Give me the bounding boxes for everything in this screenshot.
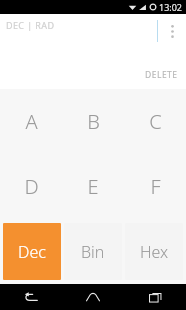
button[interactable]: E	[62, 154, 124, 219]
staticText: Dec	[18, 241, 46, 263]
button[interactable]: C	[124, 89, 186, 154]
button[interactable]: D	[0, 154, 62, 219]
staticText: Hex	[140, 241, 169, 263]
staticText: B	[87, 108, 100, 135]
staticText: D	[24, 173, 39, 200]
button[interactable]: Dec	[3, 223, 61, 280]
staticText: A	[25, 108, 38, 135]
button[interactable]: F	[124, 154, 186, 219]
staticText: F	[150, 173, 161, 200]
button[interactable]: Back	[0, 284, 62, 310]
staticText: DEC | RAD	[6, 19, 55, 31]
button[interactable]: Bin	[64, 223, 122, 280]
staticText: 13:02	[159, 1, 183, 13]
button[interactable]: Recent apps	[124, 284, 186, 310]
staticText: DELETE	[145, 69, 178, 81]
staticText: E	[87, 173, 99, 200]
button[interactable]: More options	[163, 18, 181, 44]
button[interactable]: B	[62, 89, 124, 154]
button[interactable]: A	[0, 89, 62, 154]
button[interactable]: Hex	[125, 223, 183, 280]
button[interactable]: DELETE	[137, 65, 186, 85]
staticText: C	[149, 108, 162, 135]
button[interactable]: Home	[62, 284, 124, 310]
staticText: Bin	[81, 241, 105, 263]
